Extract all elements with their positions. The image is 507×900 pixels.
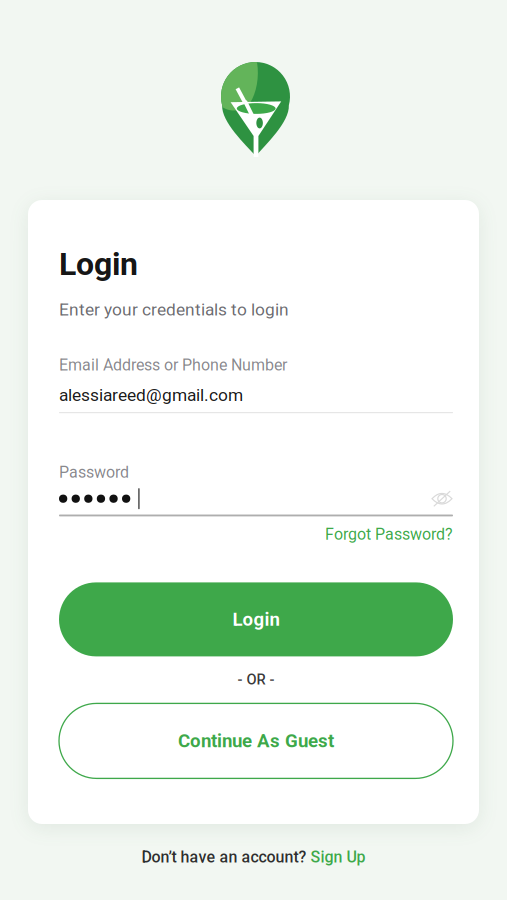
staticText: Email Address or Phone Number [59,356,287,374]
staticText: alessiareed@gmail.com [59,385,243,405]
staticText: Login [59,245,138,283]
staticText: Forgot Password? [325,525,453,544]
button[interactable]: Continue As Guest [59,703,453,778]
staticText: Password [59,463,129,482]
button[interactable]: Show password [431,490,453,508]
button[interactable]: Sign Up [310,848,365,866]
staticText: Login [232,608,279,630]
staticText: Don’t have an account? [141,848,310,866]
button[interactable]: Forgot Password? [325,525,453,544]
staticText: Continue As Guest [178,730,334,752]
staticText: Enter your credentials to login [59,299,289,320]
staticText: - OR - [237,671,274,688]
staticText: Sign Up [310,848,365,866]
button[interactable]: Login [59,582,453,656]
